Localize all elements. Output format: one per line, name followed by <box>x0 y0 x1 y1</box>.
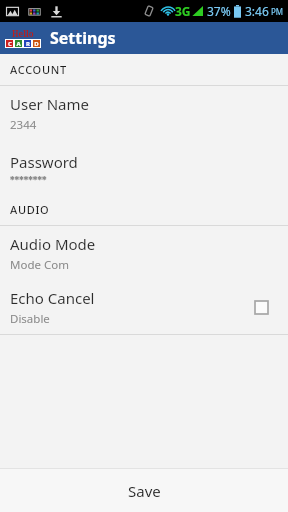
button[interactable]: Save <box>0 469 288 512</box>
button[interactable]: Echo Cancel checkbox <box>248 294 274 320</box>
button[interactable]: User Name <box>0 86 288 140</box>
staticText: 3G <box>175 3 191 19</box>
staticText: Save <box>128 481 161 501</box>
staticText: Echo Cancel <box>10 288 95 308</box>
staticText: Settings <box>50 27 116 49</box>
staticText: AUDIO <box>10 202 50 217</box>
staticText: ACCOUNT <box>10 62 67 77</box>
staticText: D <box>34 40 39 47</box>
staticText: Disable <box>10 311 50 327</box>
staticText: Password <box>10 152 78 172</box>
button[interactable]: Password <box>0 140 288 194</box>
staticText: Mode Com <box>10 257 69 273</box>
staticText: Hello <box>12 28 34 39</box>
button[interactable]: Audio Mode <box>0 226 288 280</box>
staticText: R <box>26 40 30 47</box>
staticText: C <box>8 40 12 47</box>
staticText: 3:46 <box>245 3 269 19</box>
staticText: 37% <box>207 3 231 19</box>
staticText: A <box>16 40 21 47</box>
staticText: 2344 <box>10 117 37 133</box>
staticText: User Name <box>10 94 90 114</box>
button[interactable]: Echo Cancel <box>0 280 288 334</box>
staticText: Audio Mode <box>10 234 96 254</box>
staticText: PM <box>271 6 284 17</box>
